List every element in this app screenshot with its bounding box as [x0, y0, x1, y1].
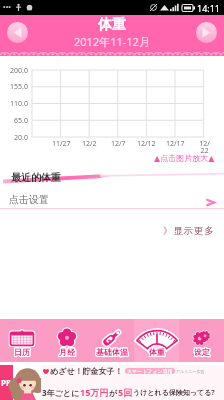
staticText: 日历 [13, 348, 29, 358]
staticText: 200.0 [10, 66, 28, 76]
staticText: 月经 [60, 348, 76, 358]
staticText: 基础体温 [96, 346, 128, 356]
staticText: 月经 [60, 347, 76, 357]
staticText: 体重 [148, 347, 164, 357]
staticText: ▲点击图片放大▲ [154, 153, 215, 163]
staticText: アルミニー広告 [176, 369, 205, 374]
staticText: ••• [3, 3, 11, 13]
staticText: 12/ 22 [199, 139, 210, 156]
staticText: 12/17 [166, 139, 185, 149]
staticText: 15万円 [80, 386, 109, 398]
staticText: 基础体温 [96, 347, 128, 357]
staticText: 12/12 [137, 139, 156, 149]
staticText: 月经 [60, 346, 76, 356]
staticText: 基础体温 [95, 347, 127, 357]
staticText: 基础体温 [97, 347, 129, 357]
staticText: 基础体温 [96, 348, 128, 358]
button[interactable]: 日历 [0, 319, 44, 362]
button[interactable]: Previous month [7, 22, 28, 43]
staticText: 日历 [13, 346, 29, 356]
staticText: が [109, 388, 118, 398]
staticText: 月经 [59, 348, 75, 358]
staticText: 》显示更多 [163, 225, 215, 237]
staticText: 日历 [14, 346, 30, 356]
staticText: 设定 [193, 347, 209, 357]
button[interactable]: 》显示更多 [163, 225, 215, 237]
staticText: 110.0 [10, 99, 28, 109]
staticText: 月经 [59, 347, 75, 357]
staticText: 11/27 [52, 139, 71, 149]
staticText: 日历 [15, 346, 31, 356]
staticText: 月经 [58, 348, 74, 358]
staticText: 日历 [15, 348, 31, 358]
staticText: 65.0 [14, 116, 28, 126]
button[interactable]: ▲点击图片放大▲ [154, 153, 215, 163]
staticText: 体重 [149, 347, 165, 357]
staticText: 基础体温 [95, 346, 127, 356]
staticText: 基础体温 [95, 348, 127, 358]
staticText: 日历 [15, 347, 31, 357]
staticText: 点击设置 [9, 193, 49, 206]
staticText: 设定 [193, 348, 209, 358]
staticText: 体重 [150, 348, 166, 358]
staticText: 体重 [148, 348, 164, 358]
staticText: 20.0 [14, 133, 28, 143]
button[interactable]: 月经 [44, 319, 89, 362]
staticText: 12/7 [111, 139, 126, 149]
staticText: 月经 [59, 346, 75, 356]
staticText: 3年ごとに [42, 387, 80, 398]
button[interactable]: 设定 [179, 319, 224, 362]
staticText: 体重 [98, 16, 126, 34]
staticText: 5回 [118, 386, 133, 398]
staticText: 设定 [193, 346, 209, 356]
staticText: PR [1, 377, 12, 388]
staticText: 设定 [195, 346, 211, 356]
staticText: 12/2 [82, 139, 97, 149]
staticText: うけとれる保険知ってる? [133, 388, 215, 398]
staticText: 设定 [194, 348, 210, 358]
button[interactable]: PR [0, 365, 224, 400]
staticText: 最近的体重 [11, 171, 61, 184]
staticText: 月经 [58, 346, 74, 356]
staticText: 日历 [14, 348, 30, 358]
staticText: めざせ！貯金女子！ [50, 366, 123, 376]
staticText: 日历 [14, 347, 30, 357]
staticText: 体重 [150, 346, 166, 356]
staticText: 体重 [149, 348, 165, 358]
staticText: 设定 [194, 347, 210, 357]
button[interactable]: 基础体温 [89, 319, 134, 362]
button[interactable]: 体重 [134, 319, 179, 362]
staticText: 体重 [149, 346, 165, 356]
staticText: 设定 [195, 348, 211, 358]
staticText: 设定 [195, 347, 211, 357]
staticText: 体重 [150, 347, 166, 357]
staticText: 月经 [58, 347, 74, 357]
staticText: 2012年11-12月 [74, 34, 150, 49]
staticText: 日历 [13, 347, 29, 357]
staticText: 设定 [194, 346, 210, 356]
staticText: 基础体温 [97, 348, 129, 358]
button[interactable]: 点击设置 [0, 189, 224, 209]
staticText: スマートフォン専用 [127, 368, 173, 374]
staticText: 体重 [148, 346, 164, 356]
staticText: 基础体温 [97, 346, 129, 356]
button[interactable]: Next month [196, 22, 217, 43]
staticText: 14:11 [197, 2, 221, 14]
staticText: 155.0 [10, 82, 28, 92]
